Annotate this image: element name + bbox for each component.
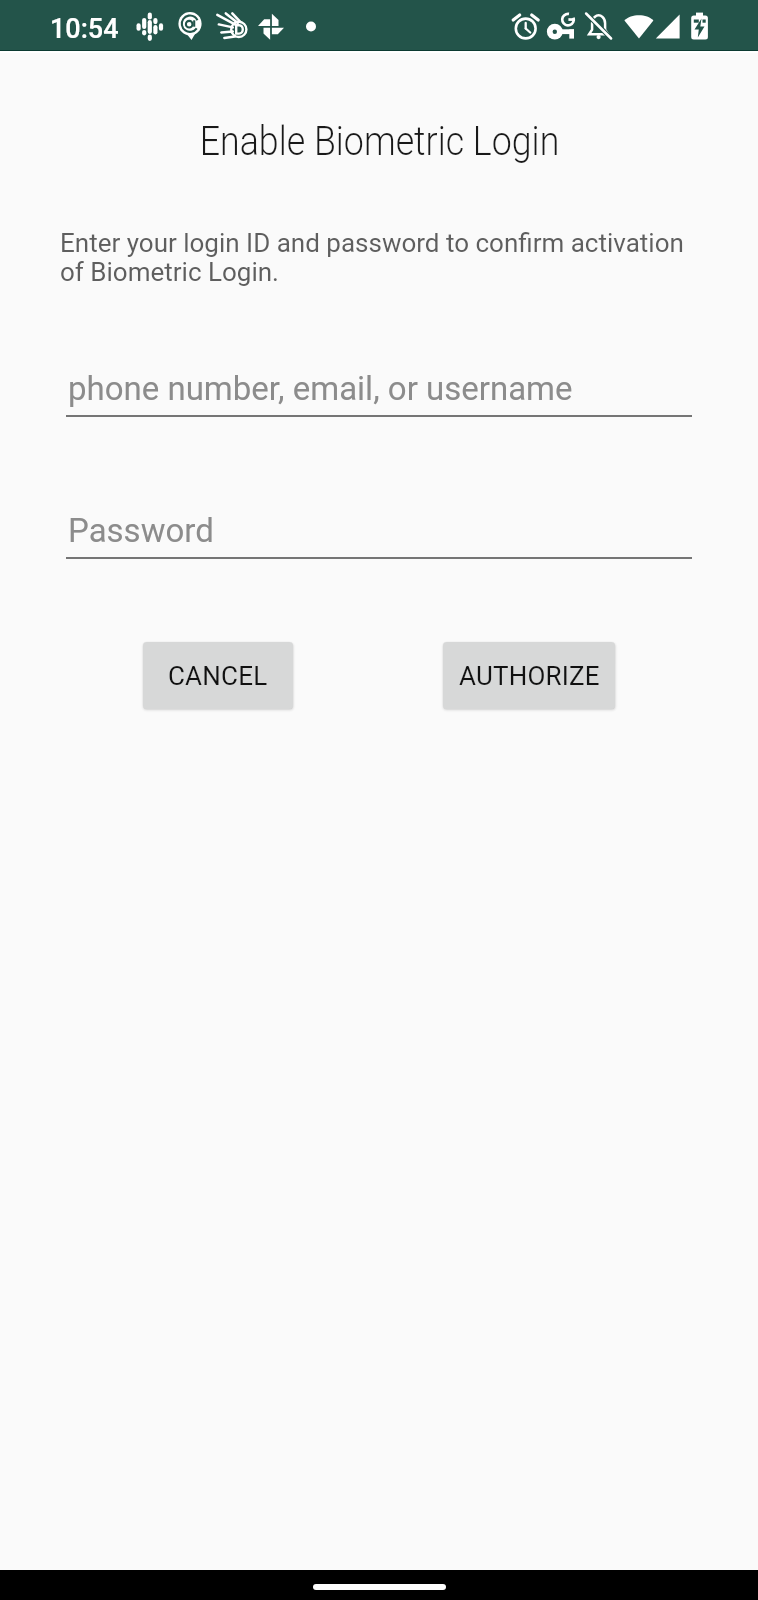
staticText: AUTHORIZE [459,661,600,691]
staticText: Enable Biometric Login [199,118,560,165]
staticText: Password [68,511,214,550]
staticText: 10:54 [50,13,119,45]
button[interactable]: CANCEL [143,642,293,709]
staticText: CANCEL [168,661,268,691]
button[interactable]: phone number, email, or username [66,359,692,417]
other: Status icons [0,0,758,51]
staticText: phone number, email, or username [68,369,573,408]
button[interactable]: AUTHORIZE [443,642,615,709]
other: Home gesture bar [0,1570,758,1600]
staticText: Enter your login ID and password to conf… [60,228,710,287]
button[interactable]: Password [66,501,692,559]
